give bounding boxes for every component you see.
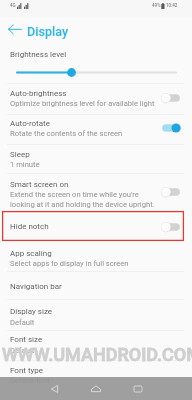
button[interactable] bbox=[0, 300, 192, 330]
button[interactable]: Smart screen on bbox=[158, 183, 184, 201]
button[interactable] bbox=[0, 212, 192, 241]
button[interactable]: Recent apps bbox=[122, 377, 154, 400]
staticText: 1 minute bbox=[10, 160, 40, 169]
staticText: 10:42 bbox=[166, 3, 178, 8]
staticText: Smart screen on bbox=[10, 180, 69, 189]
staticText: App scaling bbox=[10, 249, 52, 258]
button[interactable]: Back bbox=[5, 20, 25, 40]
button[interactable] bbox=[0, 330, 192, 360]
staticText: Select apps to display in full screen bbox=[10, 259, 129, 268]
button[interactable] bbox=[0, 360, 192, 390]
staticText: Hide notch bbox=[10, 222, 49, 231]
button[interactable] bbox=[0, 242, 192, 271]
staticText: Brightness level bbox=[10, 50, 67, 59]
button[interactable]: Hide notch bbox=[158, 218, 184, 236]
staticText: Sleep bbox=[10, 150, 30, 159]
staticText: 4G bbox=[10, 3, 16, 8]
staticText: Rotate the contents of the screen bbox=[10, 129, 123, 138]
button[interactable] bbox=[0, 83, 192, 114]
staticText: Default bbox=[10, 346, 35, 355]
button[interactable] bbox=[0, 272, 192, 299]
staticText: Auto-brightness bbox=[10, 89, 67, 98]
staticText: Default bbox=[10, 318, 35, 327]
button[interactable] bbox=[0, 174, 192, 212]
staticText: Display size bbox=[10, 307, 53, 316]
staticText: Optimize brightness level for available … bbox=[10, 99, 155, 108]
staticText: Font size bbox=[10, 335, 43, 344]
button[interactable] bbox=[0, 144, 192, 174]
staticText: looking at it and holding the device upr… bbox=[10, 200, 155, 209]
button[interactable] bbox=[0, 114, 192, 144]
staticText: Extend the screen on time while you're bbox=[10, 190, 139, 199]
staticText: 49% bbox=[152, 3, 161, 8]
staticText: Auto-rotate bbox=[10, 119, 50, 128]
staticText: Default font bbox=[10, 376, 50, 385]
staticText: Font type bbox=[10, 366, 44, 375]
staticText: WWW.UMAHDROID.COM bbox=[2, 344, 192, 365]
staticText: Display bbox=[27, 24, 69, 39]
button[interactable]: Auto-rotate bbox=[158, 119, 184, 137]
button[interactable]: Auto-brightness bbox=[158, 89, 184, 107]
button[interactable]: Back bbox=[38, 377, 70, 400]
staticText: Navigation bar bbox=[10, 282, 62, 291]
button[interactable]: Home bbox=[80, 377, 112, 400]
button[interactable] bbox=[0, 43, 192, 82]
